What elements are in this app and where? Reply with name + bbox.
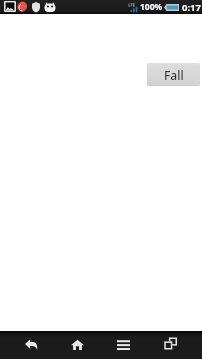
button[interactable]: Fall xyxy=(147,63,200,86)
button[interactable]: Menu xyxy=(109,331,138,358)
button[interactable]: Home xyxy=(63,331,92,358)
staticText: 100% xyxy=(140,1,163,13)
button[interactable]: Recent apps xyxy=(156,330,185,357)
button[interactable]: Back xyxy=(17,331,46,358)
staticText: Fall xyxy=(164,67,184,83)
staticText: 0:17 xyxy=(182,1,201,14)
